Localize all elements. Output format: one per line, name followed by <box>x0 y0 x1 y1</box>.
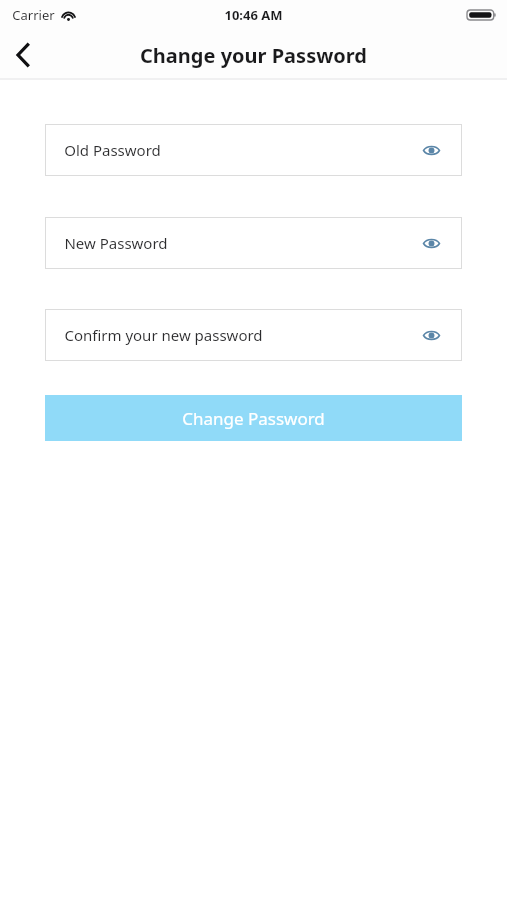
staticText: Old Password <box>64 140 161 160</box>
staticText: New Password <box>64 233 168 253</box>
button[interactable]: Old Password <box>45 124 462 176</box>
staticText: Confirm your new password <box>64 325 263 345</box>
staticText: 10:46 AM <box>224 6 283 24</box>
staticText: Change your Password <box>140 42 367 69</box>
button[interactable]: Change Password <box>45 395 462 441</box>
button[interactable]: Confirm your new password <box>45 309 462 361</box>
staticText: Carrier <box>12 6 55 24</box>
button[interactable]: Show password <box>418 230 444 256</box>
button[interactable]: Show password <box>418 137 444 163</box>
button[interactable]: New Password <box>45 217 462 269</box>
button[interactable]: Show password <box>418 322 444 348</box>
staticText: Change Password <box>182 407 325 430</box>
button[interactable]: Back <box>0 31 48 79</box>
